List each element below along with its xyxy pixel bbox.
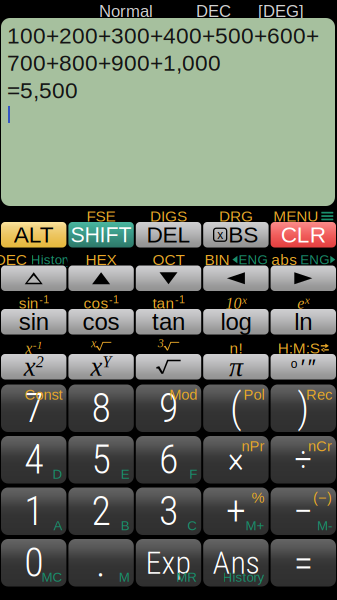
- button[interactable]: 2: [67, 487, 135, 535]
- staticText: DEC: [0, 251, 27, 268]
- button[interactable]: 6: [135, 436, 202, 483]
- button[interactable]: 0: [0, 539, 67, 586]
- staticText: 0: [24, 539, 43, 586]
- staticText: π: [229, 351, 243, 382]
- staticText: ″: [308, 354, 316, 379]
- staticText: F: [189, 467, 197, 481]
- staticText: e: [297, 294, 304, 312]
- staticText: 4: [24, 436, 43, 483]
- staticText: [DEG]: [258, 2, 304, 21]
- button[interactable]: ): [270, 384, 337, 432]
- staticText: DIGS: [150, 207, 187, 225]
- button[interactable]: tan: [135, 309, 202, 334]
- staticText: x: [217, 228, 223, 241]
- button[interactable]: Backspace: [202, 222, 270, 247]
- staticText: DEL: [146, 222, 190, 247]
- staticText: HEX: [86, 251, 117, 268]
- staticText: -1: [39, 294, 49, 305]
- button[interactable]: cos: [67, 309, 135, 334]
- staticText: ′: [301, 354, 305, 379]
- button[interactable]: Right: [270, 265, 337, 291]
- button[interactable]: 1: [0, 487, 67, 535]
- staticText: 2: [36, 353, 44, 371]
- button[interactable]: Up: [67, 265, 135, 291]
- staticText: .: [96, 539, 106, 586]
- staticText: Normal: [99, 2, 153, 21]
- staticText: OCT: [152, 251, 184, 268]
- button[interactable]: 9: [135, 384, 202, 432]
- button[interactable]: Up: [0, 265, 67, 291]
- button[interactable]: ln: [270, 309, 337, 334]
- button[interactable]: SHIFT: [67, 222, 135, 247]
- staticText: A: [53, 518, 62, 533]
- staticText: 2: [92, 488, 111, 535]
- staticText: M+: [246, 518, 265, 533]
- button[interactable]: =: [270, 539, 337, 586]
- button[interactable]: log: [202, 309, 270, 334]
- staticText: cos: [84, 294, 109, 312]
- button[interactable]: square root: [135, 354, 202, 379]
- staticText: x: [242, 294, 247, 306]
- button[interactable]: ALT: [0, 222, 67, 247]
- staticText: E: [121, 467, 130, 481]
- button[interactable]: DEL: [135, 222, 202, 247]
- staticText: Pol: [244, 386, 265, 403]
- staticText: nPr: [242, 438, 265, 454]
- button[interactable]: 7: [0, 384, 67, 432]
- staticText: 9: [159, 385, 178, 432]
- staticText: BIN: [204, 251, 229, 268]
- button[interactable]: (: [202, 384, 270, 432]
- button[interactable]: Ans: [202, 539, 270, 586]
- staticText: H:M:S: [278, 339, 320, 357]
- staticText: Ans: [212, 544, 259, 581]
- staticText: D: [52, 467, 62, 481]
- button[interactable]: ×: [202, 436, 270, 483]
- button[interactable]: Exp: [135, 539, 202, 586]
- staticText: ÷: [294, 439, 312, 481]
- staticText: Mod: [169, 386, 197, 403]
- button[interactable]: sin: [0, 309, 67, 334]
- button[interactable]: Down: [135, 265, 202, 291]
- staticText: MR: [176, 570, 197, 584]
- staticText: History: [31, 252, 73, 267]
- staticText: MC: [41, 570, 62, 584]
- staticText: tan: [152, 308, 185, 335]
- button[interactable]: x squared: [0, 354, 67, 379]
- button[interactable]: −: [270, 487, 337, 535]
- staticText: C: [187, 518, 197, 533]
- staticText: MENU: [273, 207, 318, 225]
- button[interactable]: Left: [202, 265, 270, 291]
- staticText: Y: [103, 353, 112, 371]
- button[interactable]: 3: [135, 487, 202, 535]
- staticText: n!: [229, 339, 242, 357]
- staticText: 3: [159, 488, 178, 535]
- button[interactable]: ÷: [270, 436, 337, 483]
- staticText: x: [91, 352, 103, 381]
- staticText: +: [226, 488, 246, 535]
- staticText: −: [293, 488, 313, 535]
- staticText: History: [223, 570, 265, 584]
- staticText: x: [25, 339, 32, 357]
- staticText: sin: [19, 308, 49, 335]
- staticText: cos: [83, 308, 120, 335]
- button[interactable]: 8: [67, 384, 135, 432]
- staticText: ×: [227, 439, 244, 481]
- staticText: CLR: [281, 222, 326, 247]
- button[interactable]: .: [67, 539, 135, 586]
- button[interactable]: degrees minutes seconds: [270, 354, 337, 379]
- staticText: =5,500: [7, 78, 78, 103]
- button[interactable]: 4: [0, 436, 67, 483]
- button[interactable]: pi: [202, 354, 270, 379]
- staticText: Exp: [145, 544, 191, 581]
- staticText: nCr: [308, 438, 332, 454]
- button[interactable]: Clear: [270, 222, 337, 247]
- button[interactable]: 5: [67, 436, 135, 483]
- staticText: (: [230, 385, 242, 432]
- staticText: DRG: [219, 207, 253, 225]
- button[interactable]: +: [202, 487, 270, 535]
- staticText: =: [294, 539, 313, 586]
- staticText: x: [305, 294, 310, 306]
- staticText: 10: [225, 294, 241, 312]
- staticText: abs: [271, 251, 297, 268]
- button[interactable]: x to the y: [67, 354, 135, 379]
